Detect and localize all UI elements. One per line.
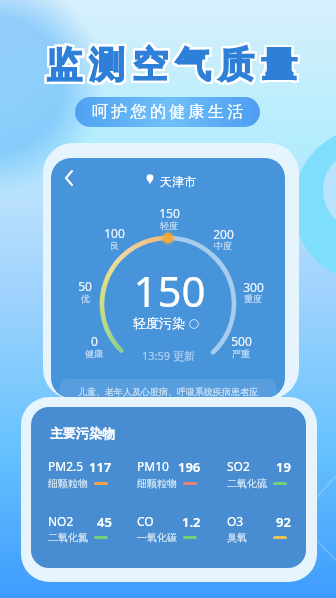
- staticText: 细颗粒物: [48, 477, 88, 490]
- staticText: 45: [97, 513, 112, 531]
- button[interactable]: Back: [55, 164, 83, 192]
- button[interactable]: PM10: [137, 458, 215, 490]
- button[interactable]: PM2.5: [48, 458, 126, 490]
- staticText: 50: [78, 278, 92, 294]
- staticText: 19: [276, 458, 291, 476]
- staticText: PM2.5: [48, 458, 84, 474]
- staticText: O3: [227, 513, 244, 529]
- staticText: 117: [89, 458, 112, 476]
- staticText: 300: [243, 279, 264, 295]
- staticText: 细颗粒物: [137, 477, 177, 490]
- staticText: 一氧化碳: [137, 531, 177, 544]
- staticText: 健康: [85, 348, 103, 359]
- button[interactable]: SO2: [227, 458, 305, 490]
- staticText: 良: [110, 240, 119, 251]
- staticText: 200: [213, 226, 234, 242]
- staticText: 500: [231, 333, 252, 349]
- staticText: 1.2: [182, 513, 201, 531]
- staticText: 150: [159, 205, 180, 221]
- staticText: CO: [137, 513, 154, 529]
- staticText: NO2: [48, 513, 74, 529]
- staticText: 150: [133, 262, 206, 319]
- staticText: 中度: [214, 240, 232, 251]
- staticText: PM10: [137, 458, 169, 474]
- staticText: 二氧化氮: [48, 531, 88, 544]
- button[interactable]: NO2: [48, 513, 126, 545]
- button[interactable]: CO: [137, 513, 215, 545]
- staticText: 臭氧: [227, 531, 247, 544]
- staticText: 0: [91, 333, 98, 349]
- staticText: 100: [104, 225, 125, 241]
- staticText: 二氧化硫: [227, 477, 267, 490]
- staticText: 13:59 更新: [142, 348, 195, 363]
- staticText: 92: [276, 513, 291, 531]
- staticText: 优: [81, 293, 90, 304]
- staticText: 严重: [232, 348, 250, 359]
- button[interactable]: O3: [227, 513, 305, 545]
- button[interactable]: 呵护您的健康生活: [75, 97, 260, 127]
- staticText: 轻度: [160, 220, 178, 231]
- staticText: 196: [178, 458, 201, 476]
- staticText: 天津市: [160, 174, 196, 189]
- staticText: 主要污染物: [50, 425, 115, 441]
- staticText: SO2: [227, 458, 250, 474]
- staticText: 轻度污染: [133, 315, 185, 331]
- staticText: 呵护您的健康生活: [92, 102, 247, 122]
- staticText: 儿童、老年人及心脏病、呼吸系统疾病患者应: [78, 386, 258, 397]
- staticText: 重度: [244, 293, 262, 304]
